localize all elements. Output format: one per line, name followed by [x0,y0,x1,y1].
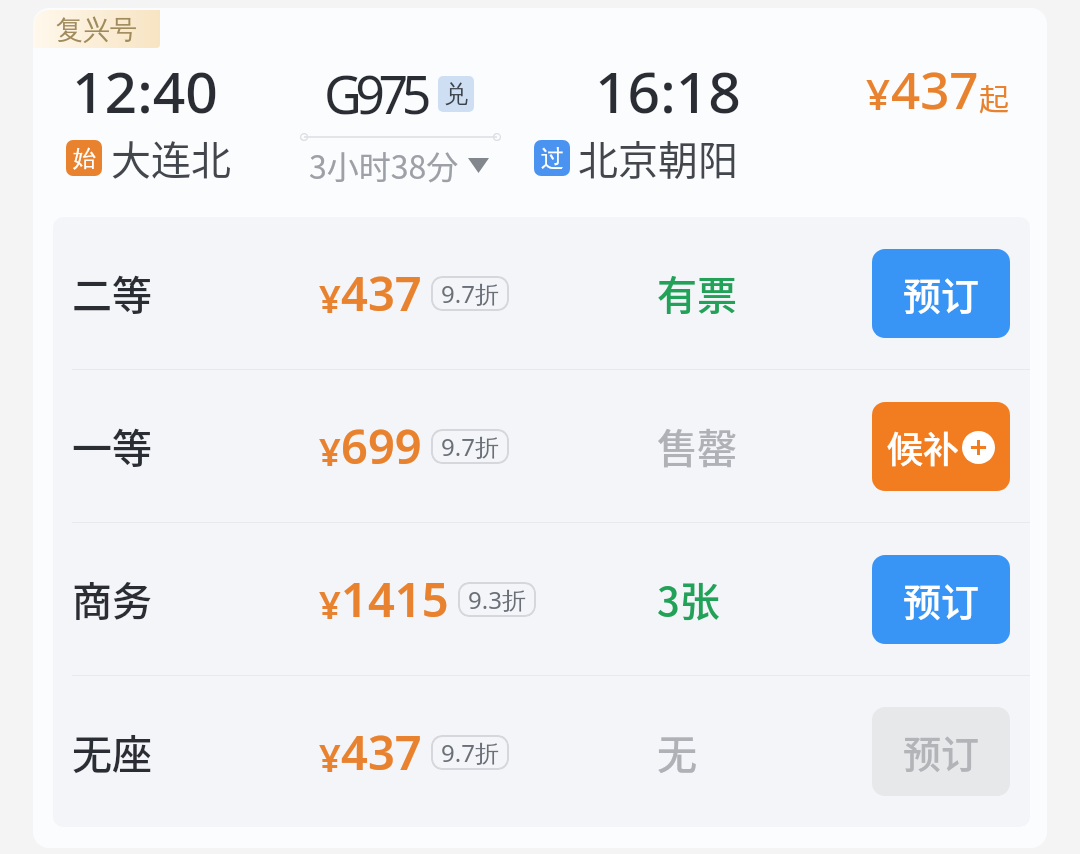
staticText: 北京朝阳 [578,129,738,187]
staticText: ¥ [319,425,341,477]
staticText: 大连北 [111,129,231,187]
staticText: 售罄 [657,417,737,475]
button[interactable]: 候补 [872,402,1010,491]
staticText: 一等 [72,417,152,475]
button[interactable]: 预订 [872,249,1010,338]
staticText: 12:40 [72,52,218,130]
staticText: 无座 [72,723,152,781]
staticText: 兑 [444,79,468,109]
staticText: 预订 [903,266,980,321]
staticText: 复兴号 [56,13,137,47]
staticText: 无 [657,723,697,781]
staticText: ¥ [319,578,341,630]
staticText: 预订 [903,572,980,627]
staticText: ¥ [319,731,341,783]
staticText: ¥ [866,65,891,122]
staticText: 起 [979,75,1009,118]
button[interactable]: 预订 [872,707,1010,796]
staticText: 3张 [657,570,720,628]
staticText: 始 [73,144,96,173]
staticText: 3小时38分 [309,142,459,188]
staticText: 437 [891,54,979,123]
staticText: 9.7折 [441,736,499,769]
staticText: 候补 [887,421,960,473]
staticText: 437 [341,720,422,784]
staticText: 437 [341,261,422,325]
staticText: G975 [324,58,426,129]
staticText: 9.7折 [441,277,499,310]
staticText: 699 [341,414,422,478]
staticText: 二等 [72,264,152,322]
staticText: 有票 [657,264,737,322]
staticText: 预订 [903,724,980,779]
staticText: 16:18 [595,52,741,130]
button[interactable]: 预订 [872,555,1010,644]
staticText: 9.3折 [468,583,526,616]
staticText: 1415 [341,567,449,631]
staticText: 9.7折 [441,430,499,463]
staticText: 过 [541,144,564,173]
staticText: 商务 [72,570,152,628]
staticText: ¥ [319,272,341,324]
